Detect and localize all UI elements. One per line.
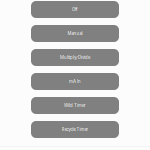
staticText: Manual bbox=[67, 31, 82, 36]
staticText: Wild Timer bbox=[64, 103, 86, 108]
button[interactable]: mA In bbox=[31, 73, 119, 90]
staticText: Recycle Timer bbox=[61, 127, 88, 132]
button[interactable]: Wild Timer bbox=[31, 97, 119, 114]
button[interactable]: Recycle Timer bbox=[31, 121, 119, 138]
staticText: mA In bbox=[69, 79, 81, 84]
button[interactable]: Multiply/Divide bbox=[31, 49, 119, 66]
staticText: Multiply/Divide bbox=[60, 55, 90, 60]
staticText: Off bbox=[72, 7, 78, 12]
button[interactable]: Manual bbox=[31, 25, 119, 42]
button[interactable]: Off bbox=[31, 1, 119, 18]
